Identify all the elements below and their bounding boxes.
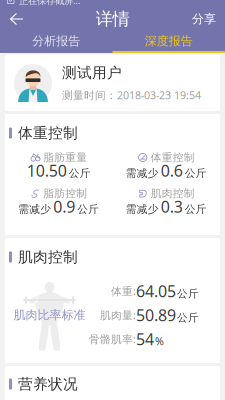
staticText: 分析报告: [32, 34, 80, 48]
staticText: 需减少: [126, 167, 159, 180]
staticText: 需减少: [18, 203, 51, 216]
staticText: 公斤: [77, 203, 99, 216]
staticText: 公斤: [177, 311, 199, 324]
staticText: 公斤: [69, 167, 91, 180]
staticText: 0.9: [53, 196, 75, 217]
staticText: 体重控制: [18, 124, 78, 142]
staticText: 骨骼肌率:: [89, 332, 136, 346]
staticText: 营养状况: [18, 375, 78, 393]
staticText: 测量时间：2018-03-23 19:54: [62, 88, 201, 102]
staticText: 肌肉量:: [100, 308, 136, 322]
button[interactable]: 分析报告: [0, 31, 112, 53]
staticText: 分享: [192, 12, 216, 26]
staticText: 需减少: [126, 203, 159, 216]
staticText: 肌肉比率标准: [13, 308, 85, 322]
button[interactable]: 深度报告: [112, 31, 225, 53]
staticText: 测试用户: [62, 64, 122, 82]
staticText: 肌肉控制: [151, 187, 195, 200]
staticText: 正在保存截屏…: [19, 0, 80, 7]
staticText: 体重控制: [151, 151, 195, 164]
staticText: 深度报告: [145, 34, 193, 48]
staticText: 64.05: [136, 280, 176, 302]
staticText: 50.89: [136, 304, 176, 326]
staticText: 详情: [95, 8, 129, 30]
staticText: %: [155, 334, 164, 348]
staticText: 肌肉控制: [18, 248, 78, 266]
staticText: 公斤: [185, 203, 207, 216]
staticText: 0.6: [161, 160, 183, 181]
button[interactable]: 返回: [0, 7, 30, 31]
staticText: 10.50: [27, 160, 67, 181]
button[interactable]: 分享: [186, 7, 225, 31]
staticText: 脂肪重量: [43, 151, 87, 164]
staticText: 体重:: [111, 284, 136, 298]
staticText: 脂肪控制: [43, 187, 87, 200]
staticText: 54: [136, 328, 154, 350]
staticText: 0.3: [161, 196, 183, 217]
staticText: 公斤: [185, 167, 207, 180]
staticText: 公斤: [177, 287, 199, 300]
